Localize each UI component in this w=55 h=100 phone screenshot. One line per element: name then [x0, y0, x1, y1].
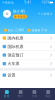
- button[interactable]: 首页: [0, 88, 14, 100]
- staticText: 国内机票: [8, 36, 24, 40]
- button[interactable]: 预订: [14, 88, 28, 100]
- button[interactable]: 国际机票: [0, 42, 55, 51]
- button[interactable]: 酒店预订: [0, 51, 55, 59]
- button[interactable]: 优惠券 6 张: [27, 28, 51, 32]
- button[interactable]: 我的: [41, 88, 55, 100]
- staticText: 个人信息: [38, 12, 50, 15]
- staticText: 中国移动: [2, 1, 14, 4]
- button[interactable]: 设置: [0, 71, 55, 79]
- staticText: 设置: [8, 73, 16, 77]
- button[interactable]: 积分 2,480: [4, 28, 27, 32]
- button[interactable]: 行程: [27, 88, 41, 100]
- staticText: 张小明: [13, 9, 25, 14]
- button[interactable]: 国内机票: [0, 34, 55, 42]
- staticText: 火车票: [8, 61, 20, 66]
- staticText: 酒店预订: [8, 53, 24, 57]
- staticText: 100%: [41, 1, 49, 4]
- staticText: 行程: [31, 95, 37, 98]
- staticText: 优惠券 6 张: [31, 28, 47, 32]
- staticText: 首页: [4, 95, 10, 98]
- staticText: 国际机票: [8, 44, 24, 49]
- staticText: 9:41: [24, 1, 31, 4]
- button[interactable]: 个人信息: [38, 12, 52, 15]
- button[interactable]: 火车票: [0, 59, 55, 68]
- staticText: 预订: [18, 95, 24, 98]
- staticText: 我的: [45, 95, 51, 98]
- staticText: 积分 2,480: [8, 28, 24, 32]
- staticText: 金卡会员: [14, 15, 26, 18]
